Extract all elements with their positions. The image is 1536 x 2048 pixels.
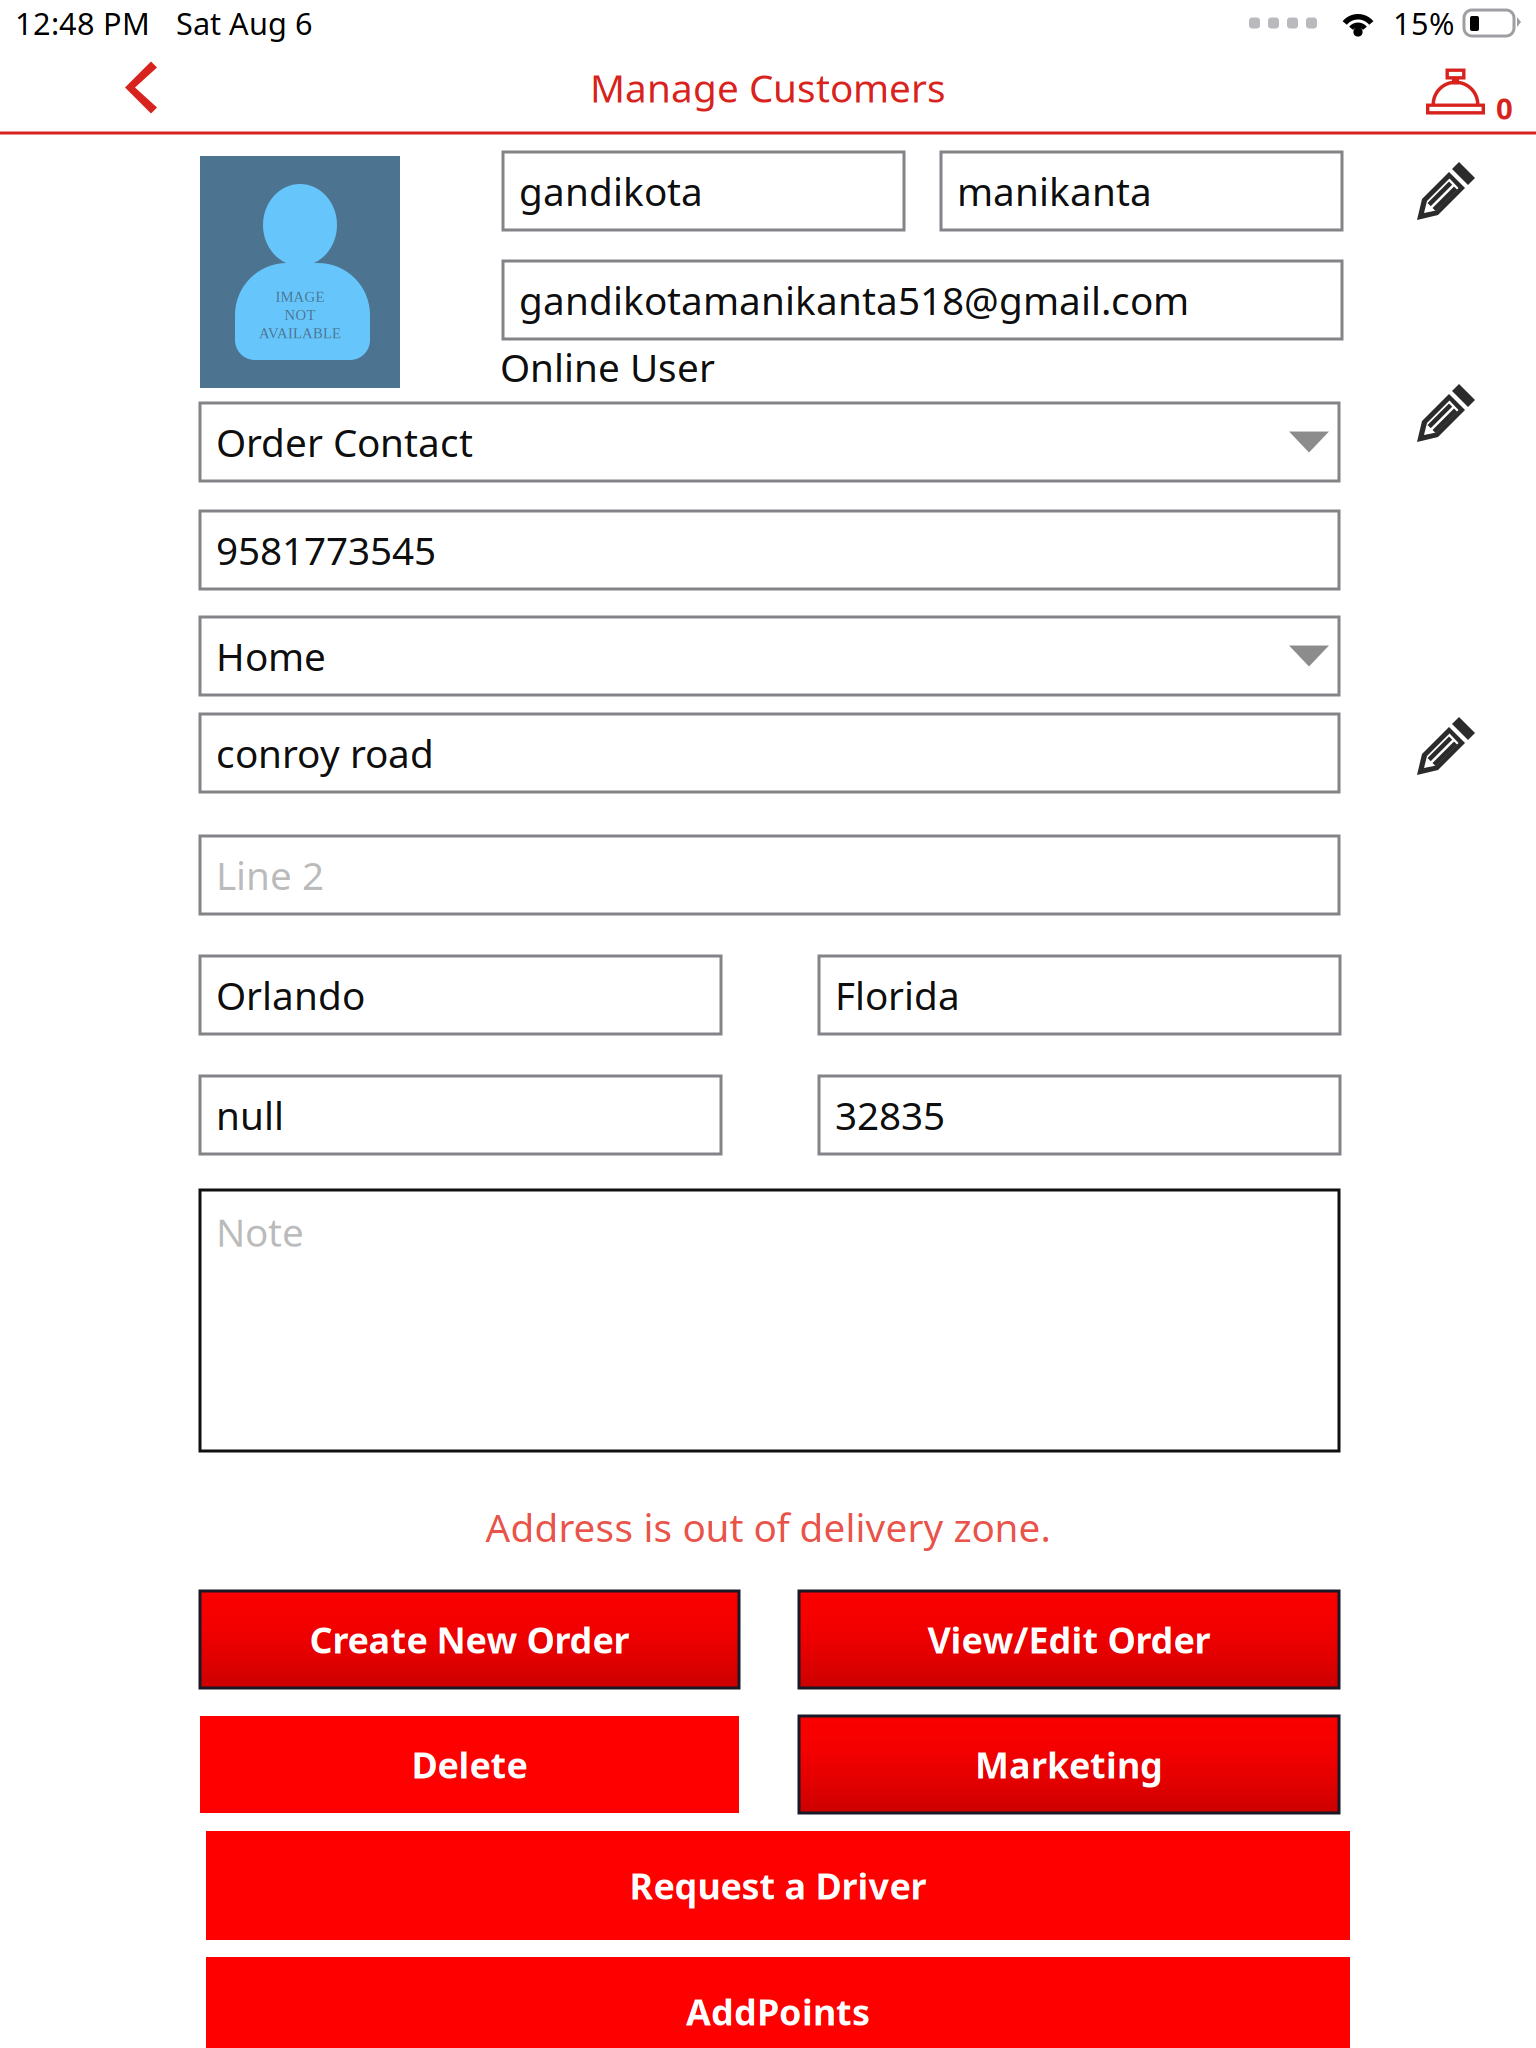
staticText: Line 2 <box>216 849 324 901</box>
staticText: AddPoints <box>686 1988 870 2035</box>
button[interactable]: Edit customer name <box>1406 151 1486 231</box>
button[interactable]: Edit order contact <box>1406 373 1486 453</box>
staticText: Orlando <box>216 969 365 1021</box>
staticText: 15% <box>1393 3 1454 43</box>
button[interactable]: Home <box>200 617 1339 695</box>
staticText: gandikota <box>519 165 703 217</box>
staticText: Home <box>216 630 326 682</box>
button[interactable]: conroy road <box>200 714 1339 792</box>
button[interactable]: 9581773545 <box>200 511 1339 589</box>
button[interactable]: View/Edit Order <box>799 1591 1339 1688</box>
staticText: null <box>216 1089 284 1141</box>
button[interactable]: Orlando <box>200 956 721 1034</box>
button[interactable]: Request a Driver <box>206 1831 1350 1940</box>
button[interactable]: Edit address <box>1406 706 1486 786</box>
button[interactable]: Back <box>103 47 188 129</box>
button[interactable]: Create New Order <box>200 1591 739 1688</box>
button[interactable]: gandikota <box>503 152 904 230</box>
staticText: AVAILABLE <box>259 325 341 341</box>
staticText: Create New Order <box>309 1616 629 1663</box>
staticText: 9581773545 <box>216 524 436 576</box>
staticText: conroy road <box>216 727 434 779</box>
staticText: View/Edit Order <box>927 1616 1210 1663</box>
staticText: IMAGE <box>275 289 324 305</box>
staticText: gandikotamanikanta518@gmail.com <box>519 274 1189 326</box>
staticText: Marketing <box>975 1741 1163 1788</box>
button[interactable]: Order Contact <box>200 403 1339 481</box>
button[interactable]: null <box>200 1076 721 1154</box>
button[interactable]: Delete <box>200 1716 739 1813</box>
button[interactable]: Note <box>200 1190 1339 1451</box>
staticText: Sat Aug 6 <box>176 3 313 43</box>
staticText: manikanta <box>957 165 1152 217</box>
staticText: NOT <box>284 307 315 323</box>
staticText: Request a Driver <box>629 1862 926 1909</box>
staticText: 32835 <box>835 1089 945 1141</box>
staticText: Florida <box>835 969 960 1021</box>
staticText: 0 <box>1496 88 1513 127</box>
staticText: 12:48 PM <box>15 3 150 43</box>
staticText: Online User <box>500 341 715 393</box>
button[interactable]: gandikotamanikanta518@gmail.com <box>503 261 1342 339</box>
staticText: Delete <box>411 1741 527 1788</box>
button[interactable]: AddPoints <box>206 1957 1350 2048</box>
button[interactable]: 32835 <box>819 1076 1340 1154</box>
staticText: Order Contact <box>216 416 473 468</box>
staticText: Manage Customers <box>590 62 946 113</box>
button[interactable]: Florida <box>819 956 1340 1034</box>
staticText: Address is out of delivery zone. <box>485 1501 1050 1553</box>
button[interactable]: Orders <box>1426 47 1525 128</box>
button[interactable]: Line 2 <box>200 836 1339 914</box>
staticText: Note <box>216 1206 304 1257</box>
button[interactable]: manikanta <box>941 152 1342 230</box>
button[interactable]: Marketing <box>799 1716 1339 1813</box>
